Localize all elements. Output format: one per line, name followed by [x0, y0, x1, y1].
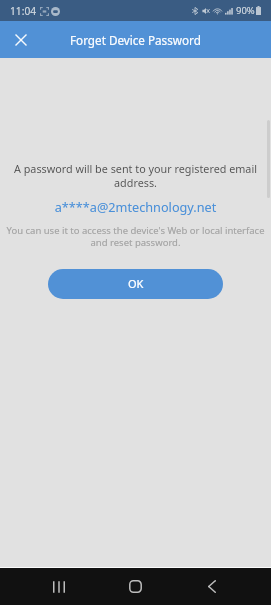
button[interactable]: Close — [7, 26, 35, 54]
staticText: You can use it to access the device's We… — [5, 224, 266, 249]
button[interactable]: Back — [189, 568, 234, 605]
button[interactable]: Home — [113, 568, 158, 605]
button[interactable]: a****a@2mtechnology.net — [5, 198, 266, 215]
staticText: Forget Device Password — [70, 32, 201, 48]
button[interactable]: OK — [48, 269, 223, 299]
staticText: OK — [128, 276, 144, 291]
staticText: 90% — [236, 4, 255, 17]
button[interactable]: Recents — [36, 568, 81, 605]
staticText: 11:04 — [10, 4, 37, 18]
staticText: A password will be sent to your register… — [5, 161, 266, 190]
